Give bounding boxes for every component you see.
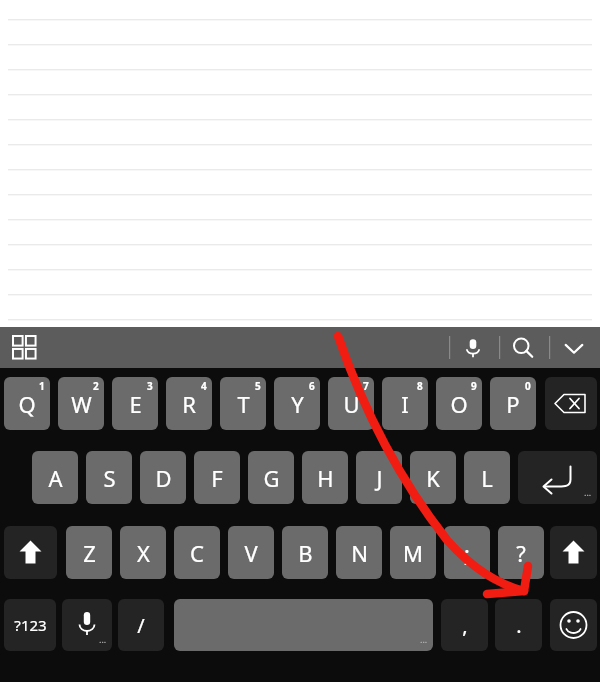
button[interactable]: F [194,451,240,504]
staticText: C [190,538,204,568]
button[interactable]: G [248,451,294,504]
staticText: P [506,389,520,419]
staticText: O [450,389,468,419]
button[interactable]: W [58,377,104,430]
staticText: Z [83,538,96,568]
button[interactable]: P [490,377,536,430]
staticText: . [516,612,522,639]
button[interactable]: Voice typing [62,599,112,651]
button[interactable]: . [495,599,542,651]
staticText: I [401,389,409,419]
staticText: 8 [417,379,423,393]
button[interactable]: Search [502,331,544,365]
staticText: 1 [39,379,45,393]
staticText: 5 [255,379,261,393]
staticText: / [137,612,145,639]
staticText: G [263,463,280,493]
button[interactable]: C [174,526,220,579]
staticText: V [244,538,258,568]
button[interactable]: ; [444,526,490,579]
staticText: Y [291,389,304,419]
button[interactable]: V [228,526,274,579]
button[interactable]: Y [274,377,320,430]
staticText: 0 [525,379,531,393]
button[interactable]: Space [174,599,433,651]
button[interactable]: I [382,377,428,430]
staticText: E [129,389,142,419]
button[interactable]: Hide keyboard [552,331,596,365]
button[interactable]: H [302,451,348,504]
button[interactable]: J [356,451,402,504]
button[interactable]: / [118,599,164,651]
button[interactable]: D [140,451,186,504]
button[interactable]: Z [66,526,112,579]
staticText: 9 [471,379,477,393]
button[interactable]: O [436,377,482,430]
button[interactable]: L [464,451,510,504]
button[interactable]: Backspace [545,377,597,430]
button[interactable]: Emoji [550,599,597,651]
staticText: K [426,463,440,493]
staticText: L [481,463,493,493]
staticText: N [351,538,368,568]
staticText: S [103,463,116,493]
staticText: 7 [363,379,369,393]
button[interactable]: , [441,599,488,651]
staticText: D [155,463,172,493]
button[interactable]: U [328,377,374,430]
button[interactable]: M [390,526,436,579]
staticText: 6 [309,379,315,393]
staticText: Q [18,389,36,419]
staticText: , [462,612,468,639]
staticText: B [298,538,313,568]
button[interactable]: Q [4,377,50,430]
staticText: F [211,463,223,493]
staticText: H [317,463,334,493]
staticText: 3 [147,379,153,393]
button[interactable]: R [166,377,212,430]
staticText: ? [516,538,526,568]
button[interactable]: A [32,451,78,504]
button[interactable]: Voice input [452,331,494,365]
button[interactable]: Shift [550,526,597,579]
staticText: X [137,538,150,568]
button[interactable]: Enter [518,451,597,504]
button[interactable]: ? [498,526,544,579]
staticText: A [48,463,63,493]
button[interactable]: Apps [6,330,44,366]
staticText: M [403,538,423,568]
staticText: J [376,463,383,493]
staticText: R [182,389,196,419]
staticText: W [71,389,92,419]
staticText: U [343,389,360,419]
staticText: ; [464,538,470,568]
button[interactable]: S [86,451,132,504]
staticText: 4 [201,379,207,393]
button[interactable]: K [410,451,456,504]
button[interactable]: Shift [4,526,57,579]
button[interactable]: B [282,526,328,579]
staticText: ... [420,633,428,645]
staticText: T [237,389,250,419]
staticText: ... [584,486,592,498]
button[interactable]: T [220,377,266,430]
staticText: ... [99,633,107,645]
button[interactable]: X [120,526,166,579]
staticText: 2 [93,379,99,393]
staticText: ?123 [14,615,47,635]
button[interactable]: N [336,526,382,579]
button[interactable]: ?123 [4,599,56,651]
button[interactable]: E [112,377,158,430]
